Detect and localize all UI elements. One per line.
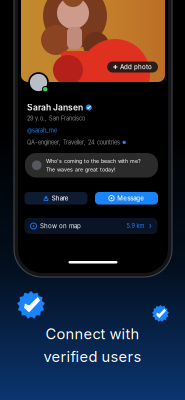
staticText: Who's coming to the beach with me? xyxy=(46,158,141,164)
staticText: Message xyxy=(117,194,144,202)
staticText: 5.9 km xyxy=(126,223,144,229)
staticText: 29 y.o., San Francisco xyxy=(27,115,85,122)
staticText: @sarah_me xyxy=(27,127,57,134)
staticText: QA-engineer, Traveller, 24 countries xyxy=(27,139,120,146)
staticText: Add photo xyxy=(120,63,152,71)
button[interactable]: Add photo xyxy=(107,61,158,72)
staticText: Share xyxy=(52,194,69,202)
button[interactable]: Message xyxy=(95,192,158,204)
staticText: verified users xyxy=(43,348,141,365)
button[interactable]: Share xyxy=(24,192,87,204)
staticText: Show on map xyxy=(40,222,81,230)
staticText: The waves are great today! xyxy=(46,166,116,173)
button[interactable]: Show on map xyxy=(24,218,157,234)
staticText: Sarah Jansen xyxy=(27,102,83,113)
staticText: Connect with xyxy=(45,325,139,343)
